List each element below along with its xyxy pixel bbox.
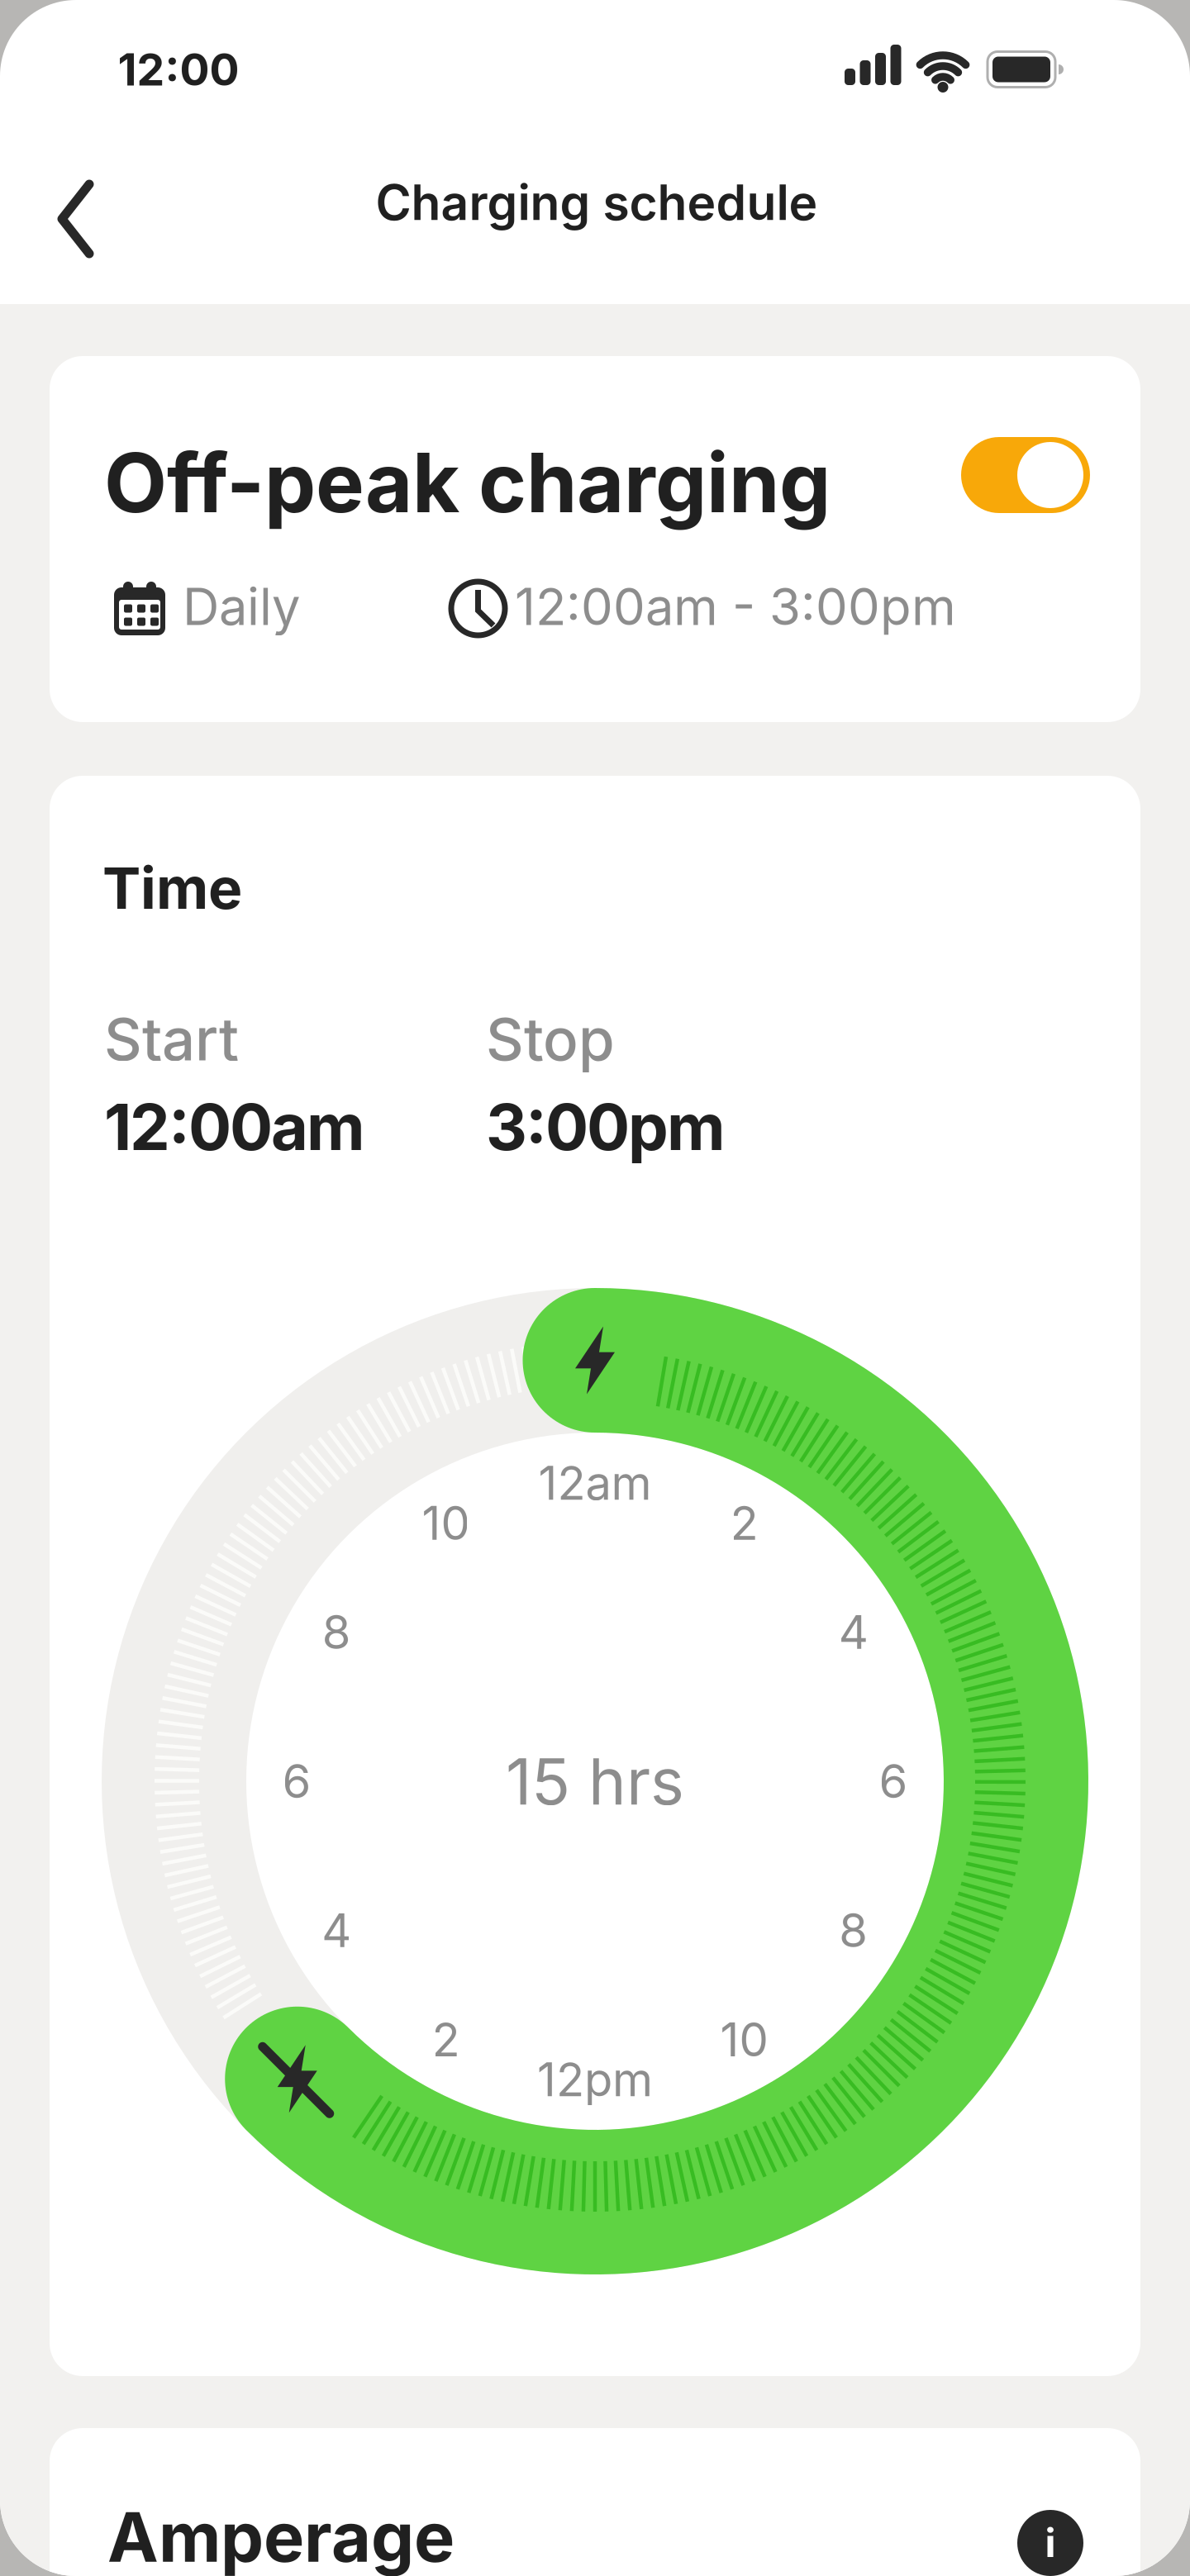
staticText: Charging schedule (376, 174, 818, 231)
staticText: Daily (183, 577, 300, 636)
staticText: Start (104, 1005, 239, 1074)
button[interactable]: Charging stop handle (249, 2031, 345, 2127)
staticText: Amperage (107, 2497, 455, 2576)
staticText: 2 (730, 1496, 758, 1550)
staticText: 10 (720, 2012, 768, 2067)
staticText: 12:00 (118, 43, 239, 95)
button[interactable]: Amperage information (1017, 2510, 1083, 2576)
staticText: 12am (538, 1456, 652, 1510)
staticText: 15 hrs (506, 1744, 684, 1819)
staticText: Time (102, 854, 242, 922)
staticText: 4 (322, 1903, 352, 1958)
staticText: i (1045, 2520, 1056, 2566)
staticText: 8 (839, 1903, 868, 1958)
staticText: Stop (486, 1005, 615, 1074)
button[interactable]: Start (104, 1005, 365, 1165)
staticText: 8 (322, 1605, 351, 1659)
staticText: 4 (838, 1605, 868, 1659)
staticText: 10 (422, 1496, 470, 1550)
staticText: 12pm (537, 2052, 653, 2107)
staticText: 3:00pm (486, 1089, 726, 1165)
staticText: 2 (432, 2012, 460, 2067)
staticText: Off-peak charging (104, 435, 831, 531)
button[interactable]: Off-peak charging (961, 437, 1090, 513)
button[interactable]: Charging start handle (547, 1312, 643, 1408)
staticText: 6 (282, 1754, 311, 1809)
staticText: 12:00am (104, 1089, 365, 1165)
staticText: 6 (879, 1754, 908, 1809)
staticText: 12:00am - 3:00pm (515, 577, 956, 636)
button[interactable]: Back (49, 173, 102, 264)
button[interactable]: Stop (486, 1005, 726, 1165)
